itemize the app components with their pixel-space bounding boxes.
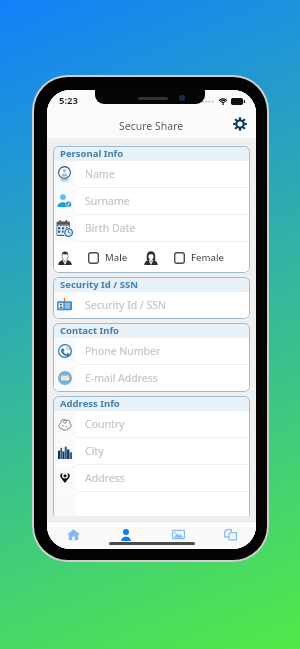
staticText: City (85, 444, 104, 458)
button[interactable]: Settings (231, 115, 249, 133)
staticText: Address Info (60, 397, 120, 410)
button[interactable]: Surname (53, 188, 250, 214)
button[interactable]: Gallery (152, 522, 204, 549)
button[interactable]: Country (53, 411, 250, 437)
staticText: Personal Info (60, 147, 124, 160)
staticText: Secure Share (119, 119, 184, 133)
staticText: Security Id / SSN (60, 278, 138, 291)
staticText: Contact Info (60, 324, 120, 337)
staticText: Birth Date (85, 221, 136, 235)
button[interactable]: Phone Number (53, 338, 250, 364)
button[interactable]: Security Id / SSN (53, 292, 250, 318)
staticText: Country (85, 417, 125, 431)
button[interactable]: Birth Date (53, 215, 250, 241)
staticText: Female (191, 251, 224, 264)
button[interactable]: E-mail Address (53, 365, 250, 391)
staticText: Name (85, 167, 115, 181)
button[interactable]: Files (204, 522, 256, 549)
button[interactable]: City (53, 438, 250, 464)
staticText: 5:23 (59, 94, 78, 107)
staticText: Phone Number (85, 344, 161, 358)
staticText: E-mail Address (85, 371, 158, 385)
staticText: Surname (85, 194, 130, 208)
staticText: Male (105, 251, 128, 264)
staticText: Security Id / SSN (85, 298, 167, 312)
button[interactable]: Home (47, 522, 100, 549)
button[interactable]: Profile (100, 522, 152, 549)
button[interactable]: Female (174, 242, 224, 273)
button[interactable]: Male (88, 242, 128, 273)
button[interactable]: Address (53, 465, 250, 491)
staticText: Address (85, 471, 125, 485)
button[interactable]: Name (53, 161, 250, 187)
button[interactable] (53, 492, 250, 516)
